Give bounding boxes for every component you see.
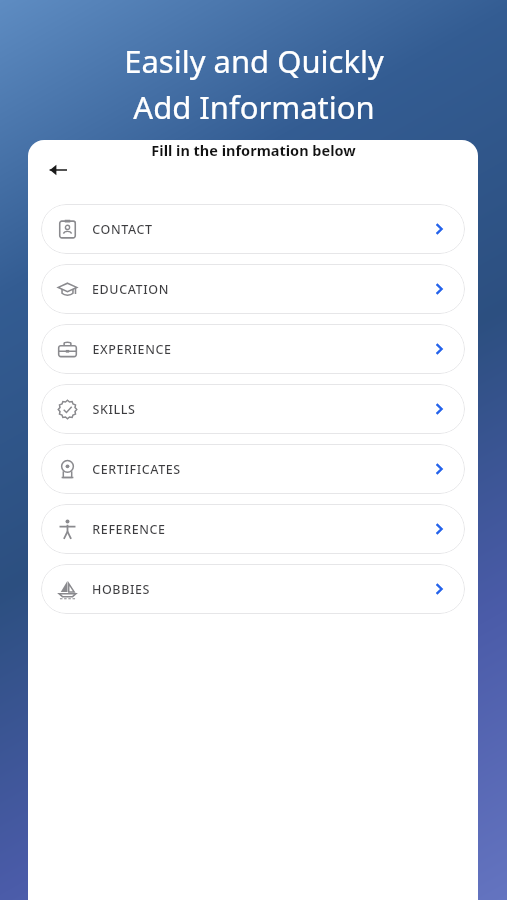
staticText: Fill in the information below [151,140,356,160]
button[interactable]: REFERENCE [41,504,465,554]
staticText: Add Information [133,86,375,128]
staticText: HOBBIES [92,581,150,598]
staticText: REFERENCE [92,521,166,538]
staticText: SKILLS [92,401,136,418]
staticText: EDUCATION [92,281,169,298]
button[interactable]: HOBBIES [41,564,465,614]
button[interactable]: SKILLS [41,384,465,434]
button[interactable]: CERTIFICATES [41,444,465,494]
staticText: CERTIFICATES [92,461,181,478]
staticText: EXPERIENCE [92,341,172,358]
button[interactable]: Back [36,148,80,192]
button[interactable]: EDUCATION [41,264,465,314]
button[interactable]: EXPERIENCE [41,324,465,374]
staticText: CONTACT [92,221,153,238]
button[interactable]: CONTACT [41,204,465,254]
staticText: Easily and Quickly [124,40,384,82]
